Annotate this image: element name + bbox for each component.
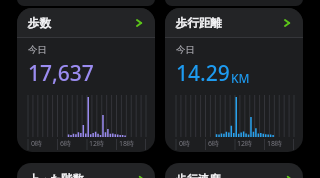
staticText: 今日: [176, 44, 195, 56]
button[interactable]: 歩行速度: [165, 163, 303, 178]
button[interactable]: 歩行距離: [165, 8, 303, 152]
button[interactable]: 歩数: [17, 8, 155, 152]
staticText: 歩数: [28, 16, 51, 30]
staticText: 歩行速度: [176, 172, 220, 178]
button[interactable]: [165, 0, 303, 6]
staticText: 0時: [179, 139, 191, 149]
button[interactable]: 歩行距離 の詳細: [280, 16, 294, 30]
staticText: KM: [231, 70, 250, 86]
staticText: 18時: [267, 139, 283, 149]
staticText: 今日: [28, 44, 47, 56]
staticText: 6時: [60, 139, 72, 149]
button[interactable]: 歩数 の詳細: [132, 16, 146, 30]
staticText: 歩行距離: [176, 16, 222, 30]
button[interactable]: [17, 0, 155, 6]
staticText: 17,637: [28, 59, 94, 88]
staticText: 上った階数: [28, 172, 84, 178]
staticText: 12時: [89, 139, 105, 149]
staticText: 14.29: [176, 59, 230, 88]
staticText: 0時: [31, 139, 43, 149]
button[interactable]: 上った階数: [17, 163, 155, 178]
staticText: 6時: [208, 139, 220, 149]
staticText: 18時: [119, 139, 135, 149]
staticText: 12時: [237, 139, 253, 149]
